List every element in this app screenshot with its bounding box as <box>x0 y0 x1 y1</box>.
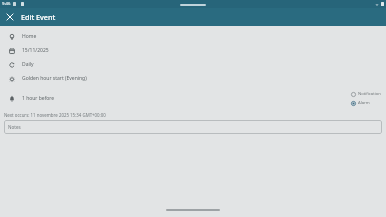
staticText: Daily <box>22 61 34 68</box>
staticText: 15/11/2025 <box>22 47 49 54</box>
staticText: Alarm <box>358 100 370 106</box>
button[interactable]: Alarm <box>351 100 370 106</box>
button[interactable]: Home <box>0 29 386 43</box>
button[interactable]: Golden hour start (Evening) <box>0 71 386 85</box>
staticText: Home <box>22 33 37 40</box>
staticText: Notes <box>8 124 21 130</box>
button[interactable]: Notes <box>4 120 382 134</box>
staticText: 9:46 <box>2 1 11 7</box>
staticText: 1 hour before <box>22 95 55 102</box>
staticText: Next occurs: 11 novembre 2025 15:34 GMT+… <box>4 112 106 118</box>
staticText: Edit Event <box>21 12 56 22</box>
button[interactable]: 15/11/2025 <box>0 43 386 57</box>
button[interactable]: Daily <box>0 57 386 71</box>
button[interactable]: Notification <box>351 91 381 97</box>
button[interactable]: 1 hour before <box>8 85 351 111</box>
staticText: Notification <box>358 91 381 97</box>
staticText: Golden hour start (Evening) <box>22 75 87 82</box>
button[interactable]: Close <box>3 10 17 24</box>
